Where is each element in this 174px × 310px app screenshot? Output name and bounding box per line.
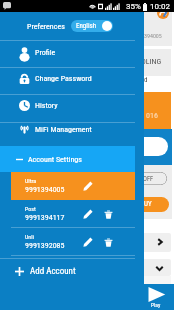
button[interactable]: Change Password — [0, 67, 135, 90]
button[interactable]: Expand — [118, 233, 171, 252]
button[interactable]: Collapse — [118, 259, 171, 276]
button[interactable]: Post — [11, 200, 135, 228]
button[interactable]: Delete — [101, 235, 115, 249]
staticText: Add Account — [30, 266, 76, 277]
staticText: Play — [151, 302, 161, 308]
button[interactable]: History — [0, 94, 135, 117]
staticText: Post — [25, 205, 36, 212]
staticText: Preferences — [27, 22, 65, 31]
staticText: MiFi Management — [35, 125, 92, 134]
staticText: OLING — [141, 57, 162, 66]
button[interactable]: Toggle — [130, 172, 167, 185]
button[interactable]: Add Account — [0, 258, 144, 284]
staticText: 9991394117 — [25, 213, 65, 222]
button[interactable]: Edit — [81, 179, 95, 193]
staticText: English — [76, 22, 97, 30]
staticText: 35% — [126, 2, 141, 11]
staticText: 016 — [146, 111, 158, 120]
button[interactable]: Play — [138, 284, 174, 310]
staticText: 9991392085 — [25, 241, 65, 250]
staticText: Profile — [35, 48, 56, 57]
staticText: d — [144, 76, 148, 84]
staticText: OFF — [143, 175, 154, 183]
staticText: P UP — [129, 142, 143, 150]
button[interactable]: Delete — [101, 207, 115, 221]
button[interactable]: Edit — [81, 207, 95, 221]
staticText: 9991394005 — [25, 185, 65, 194]
staticText: History — [35, 101, 58, 110]
button[interactable]: Unli — [11, 228, 135, 256]
button[interactable]: Ultra — [11, 172, 135, 200]
staticText: Ultra — [25, 177, 37, 184]
button[interactable]: UY — [128, 197, 169, 212]
staticText: Unli — [25, 233, 35, 240]
staticText: Change Password — [35, 74, 92, 83]
button[interactable]: English — [71, 20, 113, 32]
staticText: Account Settings — [28, 155, 82, 164]
staticText: 10:02 — [150, 2, 170, 11]
button[interactable]: Profile — [0, 41, 135, 64]
staticText: UY — [144, 200, 152, 208]
button[interactable]: Edit — [81, 235, 95, 249]
button[interactable]: Account Settings — [0, 146, 135, 172]
button[interactable]: Preferences — [0, 12, 144, 40]
button[interactable]: MiFi Management — [0, 118, 135, 141]
staticText: 394005 — [144, 32, 162, 39]
